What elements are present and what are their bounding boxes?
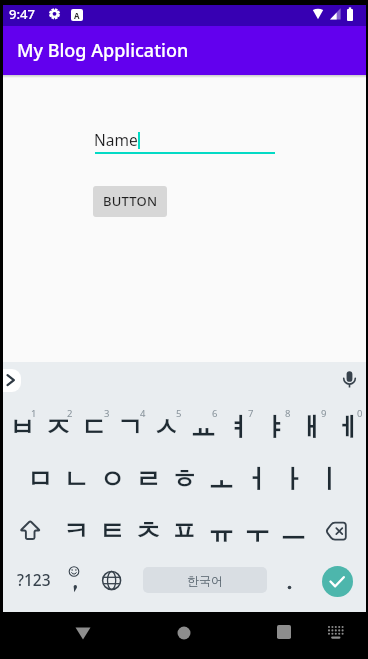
staticText: ㅎ — [171, 463, 197, 496]
staticText: ㅍ — [171, 515, 197, 548]
button[interactable]: ㅋ — [58, 506, 94, 556]
staticText: ㅏ — [280, 463, 306, 496]
staticText: ?123 — [17, 569, 51, 590]
button[interactable]: ㅑ — [257, 402, 293, 452]
staticText: 한국어 — [187, 573, 223, 588]
button[interactable] — [122, 612, 245, 659]
button[interactable] — [3, 369, 21, 392]
button[interactable]: ㅊ — [130, 506, 166, 556]
button[interactable]: ㄱ — [112, 402, 148, 452]
button[interactable]: ㅗ — [203, 454, 239, 504]
staticText: ㅡ — [280, 515, 306, 548]
button[interactable]: ㄷ — [76, 402, 112, 452]
staticText: ㅣ — [316, 463, 342, 496]
staticText: Name — [94, 129, 138, 150]
button[interactable] — [322, 566, 353, 597]
button[interactable]: ㅕ — [221, 402, 257, 452]
staticText: ㅁ — [27, 463, 53, 496]
button[interactable]: BUTTON — [93, 186, 167, 217]
button[interactable] — [245, 612, 368, 659]
staticText: ㄴ — [63, 463, 89, 496]
staticText: ㅛ — [190, 411, 216, 444]
staticText: 5 — [176, 407, 182, 419]
button[interactable]: ㅅ — [148, 402, 184, 452]
staticText: 2 — [67, 407, 73, 419]
staticText: ㅂ — [9, 411, 35, 444]
button[interactable]: ㅈ — [40, 402, 76, 452]
button[interactable]: ㅛ — [185, 402, 221, 452]
button[interactable]: ㅐ — [293, 402, 329, 452]
staticText: ㅕ — [226, 411, 252, 444]
button[interactable]: ㅂ — [4, 402, 40, 452]
button[interactable]: ㅇ — [94, 454, 130, 504]
button[interactable]: ㅣ — [311, 454, 347, 504]
staticText: ㄷ — [81, 411, 107, 444]
staticText: 6 — [212, 407, 218, 419]
button[interactable] — [0, 612, 122, 659]
button[interactable]: ㅜ — [239, 506, 275, 556]
staticText: ㅐ — [298, 411, 324, 444]
button[interactable]: 한국어 — [143, 567, 267, 593]
staticText: ㅇ — [99, 463, 125, 496]
button[interactable]: ㅍ — [166, 506, 202, 556]
staticText: ㅋ — [63, 515, 89, 548]
staticText: ㄹ — [135, 463, 161, 496]
button[interactable]: ㅔ — [329, 402, 365, 452]
button[interactable]: ㄹ — [130, 454, 166, 504]
button[interactable]: ㅡ — [275, 506, 311, 556]
button[interactable]: ㄴ — [58, 454, 94, 504]
staticText: ㅊ — [135, 515, 161, 548]
staticText: BUTTON — [103, 192, 158, 210]
button[interactable]: ㅎ — [166, 454, 202, 504]
staticText: ㄱ — [117, 411, 143, 444]
staticText: 9:47 — [9, 5, 35, 23]
staticText: ㅔ — [334, 411, 360, 444]
button[interactable]: My Blog Application — [3, 26, 366, 75]
staticText: ㅑ — [262, 411, 288, 444]
button[interactable]: ㅁ — [22, 454, 58, 504]
staticText: A — [74, 10, 80, 21]
staticText: 3 — [104, 407, 110, 419]
staticText: ㅗ — [208, 463, 234, 496]
staticText: ㅓ — [244, 463, 270, 496]
staticText: My Blog Application — [17, 38, 189, 63]
button[interactable]: ?123 — [6, 563, 61, 595]
button[interactable]: ㅓ — [239, 454, 275, 504]
button[interactable]: ㅏ — [275, 454, 311, 504]
staticText: 8 — [285, 407, 291, 419]
staticText: ㅈ — [45, 411, 71, 444]
staticText: ㅌ — [99, 515, 125, 548]
staticText: ㅜ — [244, 515, 270, 548]
staticText: 1 — [31, 407, 37, 419]
staticText: ㅅ — [153, 411, 179, 444]
staticText: 7 — [248, 407, 254, 419]
staticText: 4 — [140, 407, 146, 419]
button[interactable]: ㅌ — [94, 506, 130, 556]
staticText: 0 — [357, 407, 363, 419]
staticText: 9 — [321, 407, 327, 419]
staticText: ㅠ — [208, 515, 234, 548]
button[interactable]: ㅠ — [203, 506, 239, 556]
